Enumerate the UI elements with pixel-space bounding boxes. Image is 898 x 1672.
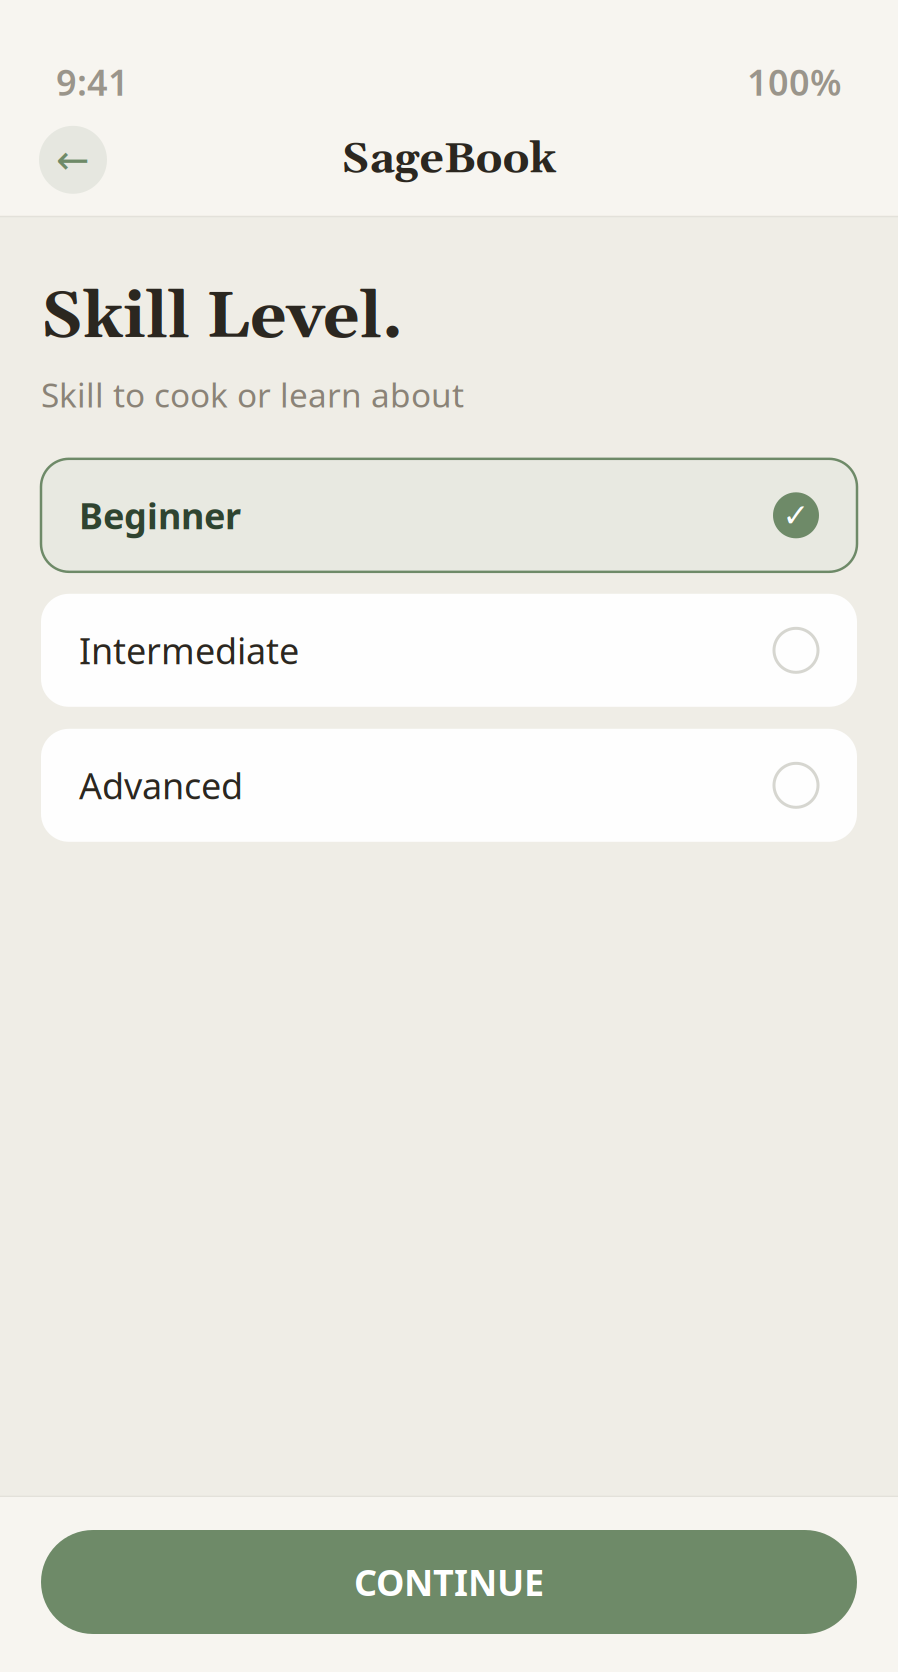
staticText: CONTINUE [354, 1558, 544, 1606]
button[interactable]: Back [39, 126, 107, 194]
button[interactable]: Intermediate [41, 594, 857, 707]
staticText: Beginner [79, 491, 241, 539]
staticText: ✓ [782, 497, 809, 533]
button[interactable]: Beginner [41, 459, 857, 572]
staticText: 9:41 [56, 58, 129, 106]
staticText: SageBook [341, 133, 556, 187]
staticText: Advanced [79, 761, 243, 809]
staticText: Skill Level. [41, 277, 403, 358]
staticText: 100% [747, 58, 842, 106]
staticText: Skill to cook or learn about [41, 373, 464, 417]
staticText: Intermediate [79, 626, 299, 674]
button[interactable]: CONTINUE [41, 1530, 857, 1634]
staticText: ← [56, 137, 90, 182]
button[interactable]: Advanced [41, 729, 857, 842]
